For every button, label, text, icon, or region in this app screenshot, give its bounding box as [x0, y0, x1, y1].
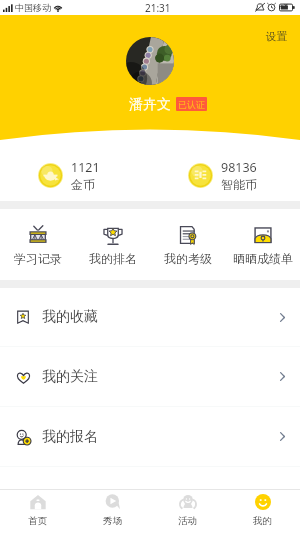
- button[interactable]: 晒晒成绩单: [225, 209, 300, 280]
- staticText: 学习记录: [14, 251, 62, 266]
- staticText: 1121: [71, 159, 100, 176]
- button[interactable]: 我的排名: [75, 209, 150, 280]
- button[interactable]: 我的关注: [0, 347, 300, 406]
- staticText: 潘卉文: [129, 96, 171, 111]
- staticText: 我的: [253, 515, 272, 527]
- button[interactable]: 我的收藏: [0, 288, 300, 346]
- button[interactable]: 秀场: [75, 490, 150, 533]
- button[interactable]: 首页: [0, 490, 75, 533]
- staticText: 21:31: [145, 1, 171, 15]
- button[interactable]: 我的报名: [0, 407, 300, 466]
- staticText: 秀场: [103, 515, 122, 527]
- staticText: 智能币: [221, 177, 257, 192]
- button[interactable]: 1121: [0, 140, 150, 201]
- staticText: 我的关注: [42, 368, 98, 386]
- staticText: 晒晒成绩单: [233, 251, 293, 266]
- button[interactable]: 我的考级: [150, 209, 225, 280]
- staticText: 98136: [221, 159, 257, 176]
- staticText: 我的考级: [164, 251, 212, 266]
- staticText: 我的报名: [42, 428, 98, 446]
- button[interactable]: 活动: [150, 490, 225, 533]
- button[interactable]: 设置: [253, 23, 300, 50]
- staticText: 我的收藏: [42, 308, 98, 326]
- staticText: 活动: [178, 515, 197, 527]
- staticText: 金币: [71, 177, 95, 192]
- button[interactable]: 头像: [126, 37, 174, 85]
- staticText: 设置: [266, 30, 287, 43]
- staticText: 已认证: [178, 99, 205, 110]
- button[interactable]: 我的: [225, 490, 300, 533]
- staticText: 首页: [28, 515, 47, 527]
- staticText: 中国移动: [15, 2, 51, 13]
- button[interactable]: 98136: [150, 140, 300, 201]
- staticText: 我的排名: [89, 251, 137, 266]
- button[interactable]: 学习记录: [0, 209, 75, 280]
